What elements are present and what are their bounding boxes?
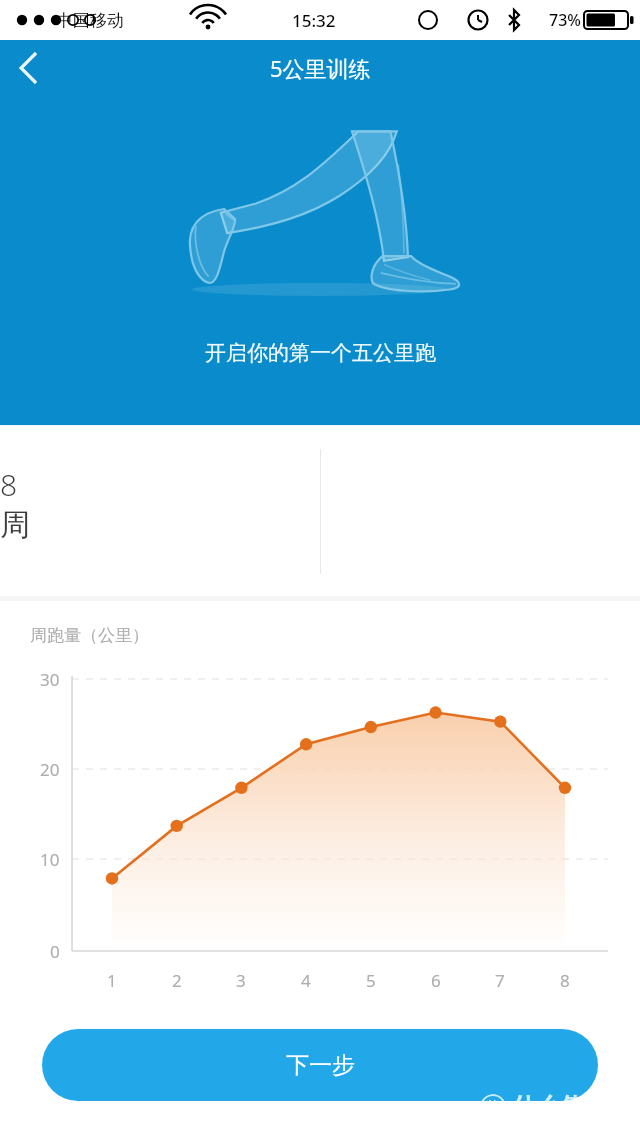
staticText: 下一步 xyxy=(286,1051,355,1080)
staticText: 周跑量（公里） xyxy=(30,625,149,646)
staticText: 73% xyxy=(549,9,581,31)
staticText: 什么值得买 xyxy=(512,1092,632,1122)
staticText: 10 xyxy=(40,848,60,871)
staticText: 5 xyxy=(366,969,376,992)
button[interactable]: 下一步 xyxy=(42,1029,598,1101)
staticText: 4 xyxy=(301,969,311,992)
staticText: 值 xyxy=(486,1098,501,1117)
staticText: 8 xyxy=(560,969,570,992)
staticText: 6 xyxy=(431,969,441,992)
staticText: 5公里训练 xyxy=(270,53,371,83)
button[interactable]: Back xyxy=(0,41,54,95)
staticText: 2 xyxy=(172,969,182,992)
staticText: 7 xyxy=(495,969,505,992)
staticText: 15:32 xyxy=(292,9,336,32)
staticText: 开启你的第一个五公里跑 xyxy=(205,340,436,366)
staticText: 30 xyxy=(40,668,60,691)
staticText: 1 xyxy=(107,969,117,992)
staticText: 20 xyxy=(40,758,60,781)
staticText: 0 xyxy=(50,940,60,963)
staticText: 中国移动 xyxy=(56,10,124,31)
staticText: 3 xyxy=(236,969,246,992)
